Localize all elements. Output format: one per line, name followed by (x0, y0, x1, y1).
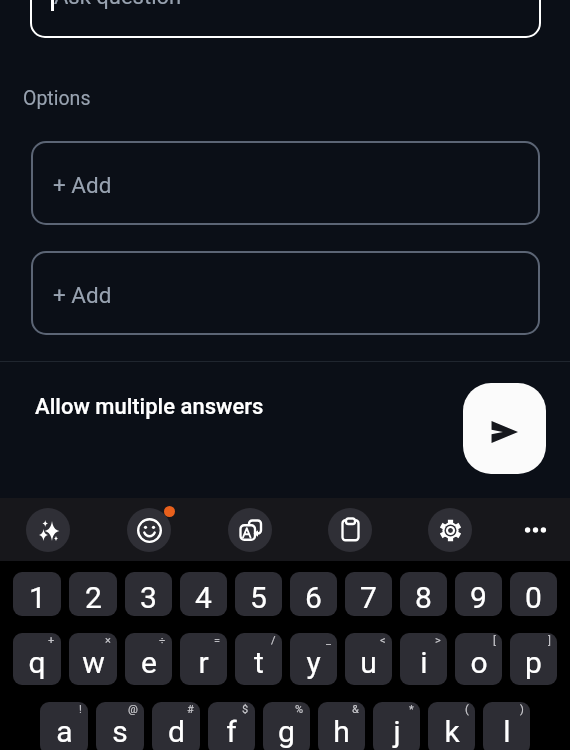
button[interactable]: Send (463, 383, 546, 474)
staticText: $ (242, 703, 249, 716)
staticText: g (278, 714, 295, 749)
button[interactable]: t (235, 633, 282, 685)
staticText: i (420, 645, 428, 680)
staticText: 9 (470, 580, 487, 615)
staticText: Options (23, 87, 91, 110)
staticText: o (470, 645, 488, 680)
staticText: ] (548, 634, 551, 647)
button[interactable]: Settings (418, 498, 482, 561)
staticText: < (380, 634, 386, 647)
button[interactable]: s (96, 702, 144, 750)
button[interactable]: 0 (510, 572, 557, 616)
staticText: u (360, 645, 377, 680)
staticText: ( (465, 703, 469, 716)
button[interactable]: e (125, 633, 172, 685)
staticText: * (409, 703, 414, 716)
staticText: 2 (85, 580, 102, 615)
staticText: j (393, 714, 401, 749)
staticText: 5 (250, 580, 267, 615)
staticText: y (306, 645, 321, 680)
staticText: Allow multiple answers (35, 394, 264, 420)
staticText: l (503, 714, 511, 749)
staticText: h (333, 714, 350, 749)
button[interactable]: + Add (31, 251, 540, 335)
button[interactable]: 7 (345, 572, 392, 616)
button[interactable]: AI suggestions (16, 498, 80, 561)
button[interactable]: a (40, 702, 88, 750)
button[interactable]: 1 (13, 572, 61, 616)
button[interactable]: y (290, 633, 337, 685)
staticText: s (112, 714, 128, 749)
button[interactable]: 3 (125, 572, 172, 616)
button[interactable]: p (510, 633, 557, 685)
staticText: + (48, 634, 55, 647)
staticText: q (28, 645, 46, 680)
staticText: / (271, 634, 276, 647)
button[interactable]: r (180, 633, 227, 685)
staticText: ) (520, 703, 524, 716)
button[interactable]: g (263, 702, 310, 750)
staticText: @ (128, 703, 138, 716)
staticText: + Add (53, 172, 112, 198)
staticText: = (214, 634, 221, 647)
staticText: r (198, 645, 209, 680)
button[interactable]: Clipboard (318, 498, 382, 561)
button[interactable]: 9 (455, 572, 502, 616)
staticText: _ (326, 634, 331, 647)
staticText: w (82, 645, 105, 680)
button[interactable]: k (428, 702, 475, 750)
staticText: p (525, 645, 542, 680)
staticText: 1 (29, 580, 46, 615)
staticText: a (56, 714, 73, 749)
staticText: × (105, 634, 111, 647)
button[interactable]: Emoji (117, 498, 181, 561)
button[interactable]: 4 (180, 572, 227, 616)
button[interactable]: i (400, 633, 447, 685)
button[interactable]: Translate (218, 498, 282, 561)
button[interactable]: w (69, 633, 117, 685)
button[interactable]: + Add (31, 141, 540, 225)
staticText: 8 (415, 580, 432, 615)
button[interactable]: f (208, 702, 255, 750)
button[interactable]: 6 (290, 572, 337, 616)
staticText: Ask question (54, 0, 182, 10)
staticText: ! (79, 703, 82, 716)
staticText: 4 (195, 580, 212, 615)
staticText: ÷ (159, 634, 166, 647)
staticText: # (187, 703, 194, 716)
staticText: f (226, 714, 237, 749)
button[interactable]: u (345, 633, 392, 685)
staticText: [ (493, 634, 496, 647)
staticText: + Add (53, 282, 112, 308)
button[interactable]: d (152, 702, 200, 750)
button[interactable]: q (13, 633, 61, 685)
button[interactable]: 5 (235, 572, 282, 616)
staticText: k (444, 714, 460, 749)
staticText: 6 (305, 580, 322, 615)
button[interactable]: j (373, 702, 420, 750)
button[interactable]: o (455, 633, 502, 685)
staticText: d (168, 714, 185, 749)
staticText: > (435, 634, 441, 647)
staticText: 7 (360, 580, 377, 615)
button[interactable]: h (318, 702, 365, 750)
button[interactable]: Ask question (30, 0, 541, 38)
staticText: t (254, 645, 264, 680)
staticText: 3 (140, 580, 157, 615)
staticText: 0 (525, 580, 542, 615)
button[interactable]: 2 (69, 572, 117, 616)
button[interactable]: 8 (400, 572, 447, 616)
staticText: e (141, 645, 157, 680)
staticText: & (352, 703, 359, 716)
button[interactable]: More options (507, 498, 563, 561)
staticText: % (295, 703, 304, 716)
button[interactable]: l (483, 702, 530, 750)
